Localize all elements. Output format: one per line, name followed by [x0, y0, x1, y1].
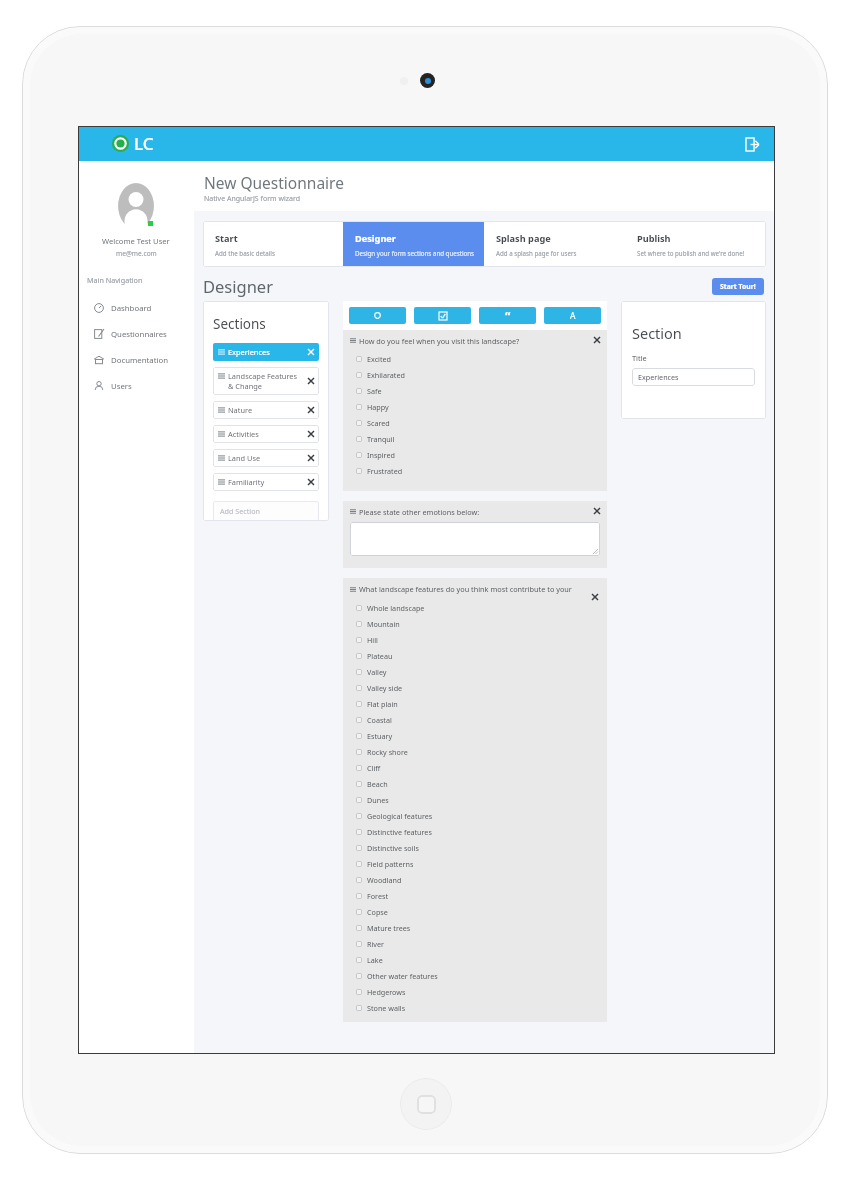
- staticText: Woodland: [367, 875, 402, 885]
- button[interactable]: Questionnaires: [78, 321, 194, 347]
- button[interactable]: Exhilarated: [350, 367, 600, 383]
- button[interactable]: Beach: [350, 776, 600, 792]
- staticText: Splash page: [496, 232, 551, 245]
- button[interactable]: Frustrated: [350, 463, 600, 479]
- button[interactable]: Other water features: [350, 968, 600, 984]
- button[interactable]: Documentation: [78, 347, 194, 373]
- staticText: Landscape Features & Change: [228, 371, 300, 391]
- staticText: Questionnaires: [111, 329, 167, 340]
- staticText: Happy: [367, 402, 389, 412]
- staticText: Add Section: [220, 506, 260, 516]
- staticText: Hedgerows: [367, 987, 406, 997]
- button[interactable]: Hedgerows: [350, 984, 600, 1000]
- staticText: Section: [632, 323, 682, 343]
- button[interactable]: Estuary: [350, 728, 600, 744]
- button[interactable]: Log out: [741, 133, 763, 155]
- button[interactable]: Dunes: [350, 792, 600, 808]
- staticText: Valley: [367, 667, 387, 677]
- button[interactable]: Activities: [213, 425, 319, 443]
- button[interactable]: Home: [400, 1078, 452, 1130]
- button[interactable]: Copse: [350, 904, 600, 920]
- staticText: Designer: [203, 275, 273, 297]
- staticText: Hill: [367, 635, 378, 645]
- button[interactable]: Whole landscape: [350, 600, 600, 616]
- staticText: Plateau: [367, 651, 393, 661]
- button[interactable]: Dashboard: [78, 295, 194, 321]
- staticText: Title: [632, 353, 647, 363]
- button[interactable]: Start: [203, 221, 343, 267]
- staticText: Familiarity: [228, 477, 265, 487]
- staticText: Forest: [367, 891, 388, 901]
- staticText: Estuary: [367, 731, 393, 741]
- button[interactable]: Distinctive soils: [350, 840, 600, 856]
- button[interactable]: Scared: [350, 415, 600, 431]
- staticText: Start Tour!: [720, 282, 756, 291]
- staticText: Stone walls: [367, 1003, 406, 1013]
- button[interactable]: Valley side: [350, 680, 600, 696]
- button[interactable]: Flat plain: [350, 696, 600, 712]
- staticText: Mature trees: [367, 923, 411, 933]
- staticText: Distinctive features: [367, 827, 432, 837]
- staticText: Mountain: [367, 619, 400, 629]
- button[interactable]: Inspired: [350, 447, 600, 463]
- button[interactable]: Valley: [350, 664, 600, 680]
- staticText: Geological features: [367, 811, 433, 821]
- staticText: Please state other emotions below:: [359, 507, 594, 517]
- button[interactable]: Geological features: [350, 808, 600, 824]
- staticText: Frustrated: [367, 466, 403, 476]
- button[interactable]: Experiences: [213, 343, 319, 361]
- staticText: Coastal: [367, 715, 392, 725]
- button[interactable]: Distinctive features: [350, 824, 600, 840]
- button[interactable]: Nature: [213, 401, 319, 419]
- button[interactable]: Familiarity: [213, 473, 319, 491]
- staticText: “: [505, 308, 511, 324]
- staticText: Flat plain: [367, 699, 398, 709]
- button[interactable]: Mature trees: [350, 920, 600, 936]
- button[interactable]: Safe: [350, 383, 600, 399]
- button[interactable]: River: [350, 936, 600, 952]
- button[interactable]: Add text question: [544, 307, 601, 324]
- staticText: Land Use: [228, 453, 261, 463]
- button[interactable]: Lake: [350, 952, 600, 968]
- button[interactable]: Cliff: [350, 760, 600, 776]
- button[interactable]: Rocky shore: [350, 744, 600, 760]
- staticText: Whole landscape: [367, 603, 425, 613]
- staticText: Designer: [355, 232, 396, 245]
- button[interactable]: Designer: [343, 221, 484, 267]
- staticText: Set where to publish and we're done!: [637, 249, 745, 257]
- staticText: River: [367, 939, 384, 949]
- button[interactable]: Splash page: [484, 221, 625, 267]
- button[interactable]: Stone walls: [350, 1000, 600, 1016]
- button[interactable]: [350, 522, 600, 556]
- button[interactable]: Landscape Features & Change: [213, 367, 319, 395]
- button[interactable]: Experiences: [632, 368, 755, 386]
- staticText: Distinctive soils: [367, 843, 419, 853]
- staticText: Safe: [367, 386, 382, 396]
- button[interactable]: Mountain: [350, 616, 600, 632]
- button[interactable]: Forest: [350, 888, 600, 904]
- staticText: A: [570, 310, 576, 322]
- button[interactable]: Happy: [350, 399, 600, 415]
- button[interactable]: Tranquil: [350, 431, 600, 447]
- button[interactable]: Start Tour!: [712, 278, 764, 295]
- button[interactable]: Publish: [625, 221, 766, 267]
- button[interactable]: Land Use: [213, 449, 319, 467]
- button[interactable]: Users: [78, 373, 194, 399]
- staticText: Dashboard: [111, 303, 152, 314]
- button[interactable]: Add radio question: [349, 307, 406, 324]
- button[interactable]: Field patterns: [350, 856, 600, 872]
- button[interactable]: Add Section: [213, 501, 319, 521]
- staticText: Add the basic details: [215, 249, 275, 257]
- button[interactable]: Add checkbox question: [414, 307, 471, 324]
- staticText: Activities: [228, 429, 259, 439]
- staticText: Cliff: [367, 763, 381, 773]
- staticText: Dunes: [367, 795, 389, 805]
- button[interactable]: Plateau: [350, 648, 600, 664]
- button[interactable]: Excited: [350, 351, 600, 367]
- button[interactable]: Add quote question: [479, 307, 536, 324]
- staticText: me@me.com: [116, 249, 157, 258]
- staticText: Exhilarated: [367, 370, 405, 380]
- button[interactable]: Hill: [350, 632, 600, 648]
- button[interactable]: Woodland: [350, 872, 600, 888]
- button[interactable]: Coastal: [350, 712, 600, 728]
